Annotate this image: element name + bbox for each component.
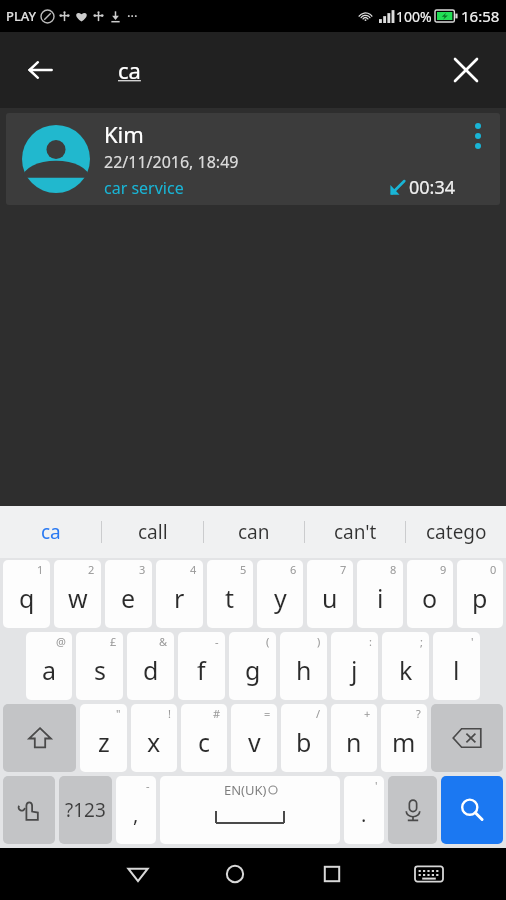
staticText: v (248, 725, 261, 759)
staticText: ?123 (65, 797, 106, 823)
staticText: 16:58 (461, 6, 500, 26)
staticText: c (198, 725, 211, 759)
staticText: 0 (490, 562, 497, 577)
button[interactable]: Hide keyboard (380, 848, 477, 900)
button[interactable]: Space (160, 776, 340, 844)
button[interactable]: Back (14, 44, 66, 96)
button[interactable]: : (331, 632, 378, 700)
staticText: m (392, 725, 416, 759)
staticText: 6 (290, 562, 297, 577)
button[interactable]: - (178, 632, 225, 700)
button[interactable]: ) (280, 632, 327, 700)
staticText: : (369, 634, 372, 649)
staticText: 100% (396, 7, 432, 26)
staticText: catego (426, 519, 487, 545)
staticText: 2 (88, 562, 95, 577)
button[interactable]: + (331, 704, 377, 772)
staticText: " (116, 706, 121, 721)
staticText: l (453, 653, 460, 687)
button[interactable]: Search (441, 776, 503, 844)
staticText: 7 (340, 562, 347, 577)
staticText: ; (420, 634, 423, 649)
button[interactable]: Voice input (388, 776, 437, 844)
staticText: / (316, 706, 321, 721)
staticText: p (472, 581, 488, 615)
button[interactable]: 2 (54, 560, 101, 628)
staticText: PLAY (6, 7, 37, 25)
staticText: a (42, 653, 57, 687)
staticText: # (213, 706, 221, 721)
staticText: ca (41, 519, 61, 545)
staticText: z (98, 725, 110, 759)
staticText: 3 (139, 562, 146, 577)
button[interactable]: £ (76, 632, 123, 700)
button[interactable]: / (281, 704, 327, 772)
button[interactable]: - (116, 776, 156, 844)
staticText: y (274, 581, 287, 615)
button[interactable]: can (204, 506, 304, 558)
staticText: 9 (440, 562, 447, 577)
staticText: can (238, 519, 270, 545)
button[interactable]: Clear search (440, 44, 492, 96)
button[interactable]: catego (406, 506, 506, 558)
button[interactable]: Recents (283, 848, 380, 900)
button[interactable]: ca (0, 506, 101, 558)
button[interactable]: 1 (3, 560, 50, 628)
staticText: o (422, 581, 438, 615)
button[interactable]: Home (186, 848, 283, 900)
staticText: , (133, 801, 139, 828)
button[interactable]: @ (26, 632, 72, 700)
staticText: x (147, 725, 161, 759)
staticText: h (296, 653, 312, 687)
staticText: r (174, 581, 185, 615)
button[interactable]: ! (131, 704, 177, 772)
staticText: can't (334, 519, 377, 545)
button[interactable]: 4 (156, 560, 203, 628)
button[interactable]: # (181, 704, 227, 772)
button[interactable]: Backspace (431, 704, 503, 772)
button[interactable]: call (102, 506, 203, 558)
button[interactable]: Handwriting (3, 776, 55, 844)
button[interactable]: ' (344, 776, 384, 844)
button[interactable]: Kim (6, 113, 500, 205)
button[interactable]: ?123 (59, 776, 112, 844)
staticText: k (399, 653, 413, 687)
button[interactable]: Back (89, 848, 186, 900)
button[interactable]: can't (305, 506, 405, 558)
staticText: £ (110, 634, 117, 649)
button[interactable]: 5 (207, 560, 253, 628)
staticText: ! (168, 706, 171, 721)
button[interactable]: ; (382, 632, 429, 700)
staticText: b (296, 725, 312, 759)
staticText: @ (56, 634, 66, 649)
button[interactable]: More options (456, 113, 500, 205)
staticText: ··· (127, 7, 138, 25)
staticText: - (215, 634, 219, 649)
staticText: t (225, 581, 235, 615)
button[interactable]: 8 (357, 560, 403, 628)
button[interactable]: = (231, 704, 277, 772)
button[interactable]: 0 (457, 560, 503, 628)
button[interactable]: 6 (257, 560, 303, 628)
button[interactable]: " (80, 704, 127, 772)
staticText: Kim (104, 119, 144, 149)
staticText: 8 (390, 562, 397, 577)
staticText: ' (375, 778, 378, 793)
staticText: j (351, 653, 358, 687)
staticText: 1 (37, 562, 44, 577)
button[interactable]: Shift (3, 704, 76, 772)
staticText: 5 (240, 562, 247, 577)
staticText: d (143, 653, 159, 687)
button[interactable]: ? (381, 704, 427, 772)
staticText: call (138, 519, 168, 545)
staticText: + (364, 706, 371, 721)
button[interactable]: ( (229, 632, 276, 700)
button[interactable]: 7 (307, 560, 353, 628)
button[interactable]: ca (118, 32, 141, 108)
button[interactable]: & (127, 632, 174, 700)
button[interactable]: ' (433, 632, 480, 700)
button[interactable]: 3 (105, 560, 152, 628)
staticText: 22/11/2016, 18:49 (104, 151, 239, 173)
staticText: 4 (190, 562, 197, 577)
button[interactable]: 9 (407, 560, 453, 628)
